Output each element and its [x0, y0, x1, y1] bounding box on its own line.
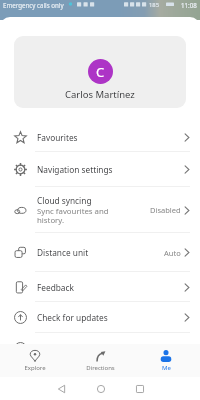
- button[interactable]: Explore: [4, 344, 66, 377]
- staticText: Distance unit: [37, 247, 89, 258]
- button[interactable]: Back: [42, 377, 81, 400]
- staticText: Directions: [86, 364, 115, 372]
- button[interactable]: Check for updates: [0, 302, 200, 333]
- staticText: Feedback: [37, 282, 74, 293]
- staticText: About: [37, 343, 61, 354]
- button[interactable]: C: [14, 36, 186, 108]
- button[interactable]: Home: [81, 377, 120, 400]
- staticText: 185: [149, 1, 159, 9]
- staticText: C: [96, 63, 105, 81]
- staticText: Auto: [164, 248, 181, 258]
- button[interactable]: Feedback: [0, 272, 200, 302]
- staticText: Me: [162, 364, 171, 372]
- button[interactable]: Recent apps: [120, 377, 159, 400]
- staticText: Explore: [24, 364, 46, 372]
- staticText: Check for updates: [37, 312, 108, 323]
- button[interactable]: Me: [135, 344, 197, 377]
- staticText: Disabled: [150, 205, 181, 215]
- staticText: Sync favourites and history.: [37, 206, 109, 226]
- button[interactable]: About: [0, 333, 200, 364]
- button[interactable]: Directions: [69, 344, 131, 377]
- button[interactable]: Cloud syncing: [0, 187, 200, 233]
- staticText: Cloud syncing: [37, 195, 92, 206]
- button[interactable]: Favourites: [0, 123, 200, 152]
- staticText: Carlos Martínez: [65, 88, 135, 101]
- staticText: Emergency calls only: [3, 1, 64, 9]
- button[interactable]: Distance unit: [0, 233, 200, 272]
- staticText: Favourites: [37, 132, 78, 143]
- button[interactable]: Navigation settings: [0, 152, 200, 187]
- staticText: Navigation settings: [37, 164, 113, 175]
- staticText: 11:08: [181, 1, 197, 9]
